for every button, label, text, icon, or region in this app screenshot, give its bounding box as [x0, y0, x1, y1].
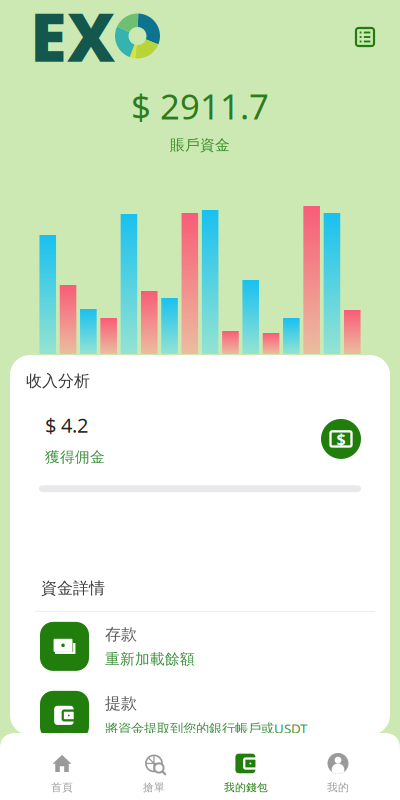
staticText: 資金詳情	[41, 578, 105, 598]
staticText: 提款	[105, 694, 137, 713]
staticText: 存款	[105, 624, 137, 644]
button[interactable]: 首頁	[16, 754, 108, 794]
staticText: 我的	[327, 781, 349, 794]
button[interactable]: 提款	[25, 681, 375, 750]
button[interactable]: 搶單	[108, 754, 200, 794]
staticText: EX	[30, 0, 115, 80]
button[interactable]: 存款	[25, 612, 375, 681]
staticText: 搶單	[143, 781, 165, 794]
button[interactable]: 我的錢包	[200, 754, 292, 794]
button[interactable]: Records	[356, 28, 374, 46]
staticText: 收入分析	[26, 371, 90, 391]
staticText: 賬戶資金	[170, 136, 230, 154]
staticText: $ 4.2	[45, 412, 88, 438]
staticText: 重新加載餘額	[105, 650, 195, 668]
staticText: 我的錢包	[224, 781, 268, 794]
staticText: $	[336, 428, 345, 449]
staticText: 將資金提取到您的銀行帳戶或USDT	[105, 719, 307, 737]
button[interactable]: 我的	[292, 754, 384, 794]
staticText: $ 2911.7	[131, 83, 269, 129]
staticText: 首頁	[51, 781, 73, 794]
staticText: 獲得佣金	[45, 448, 105, 466]
